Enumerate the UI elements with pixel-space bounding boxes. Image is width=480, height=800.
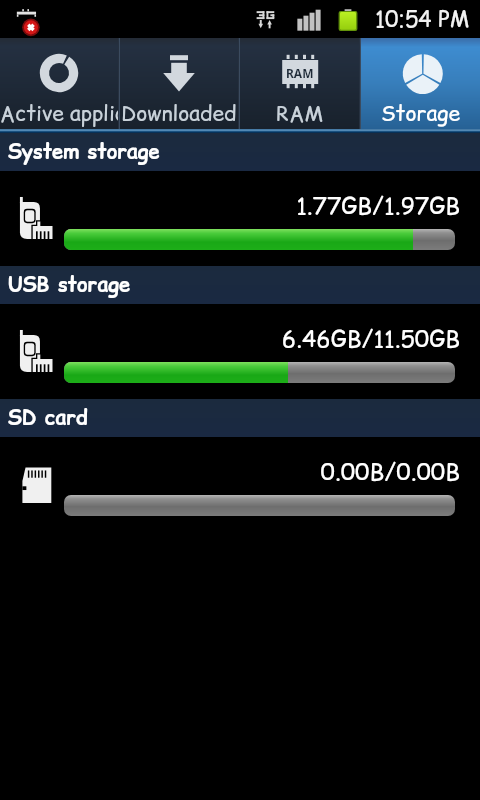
button[interactable]: 1.77GB/1.97GB	[0, 171, 480, 266]
button[interactable]: 0.00B/0.00B	[0, 437, 480, 532]
button[interactable]: RAM	[240, 38, 359, 129]
other: USB storage problem	[13, 4, 45, 36]
staticText: RAM	[276, 99, 324, 128]
staticText: 10:54 PM	[375, 4, 470, 35]
staticText: Active applications	[0, 99, 118, 128]
button[interactable]: 6.46GB/11.50GB	[0, 304, 480, 399]
staticText: RAM	[286, 65, 314, 81]
staticText: 6.46GB/11.50GB	[64, 322, 460, 355]
staticText: Downloaded	[121, 99, 237, 128]
staticText: 0.00B/0.00B	[64, 455, 460, 488]
staticText: System storage	[8, 138, 160, 166]
button[interactable]: Active applications	[0, 38, 118, 129]
staticText: 1.77GB/1.97GB	[64, 189, 460, 222]
button[interactable]: Storage	[361, 38, 480, 129]
staticText: USB storage	[8, 271, 131, 299]
staticText: Storage	[381, 99, 460, 128]
staticText: SD card	[8, 404, 88, 432]
button[interactable]: Downloaded	[120, 38, 238, 129]
